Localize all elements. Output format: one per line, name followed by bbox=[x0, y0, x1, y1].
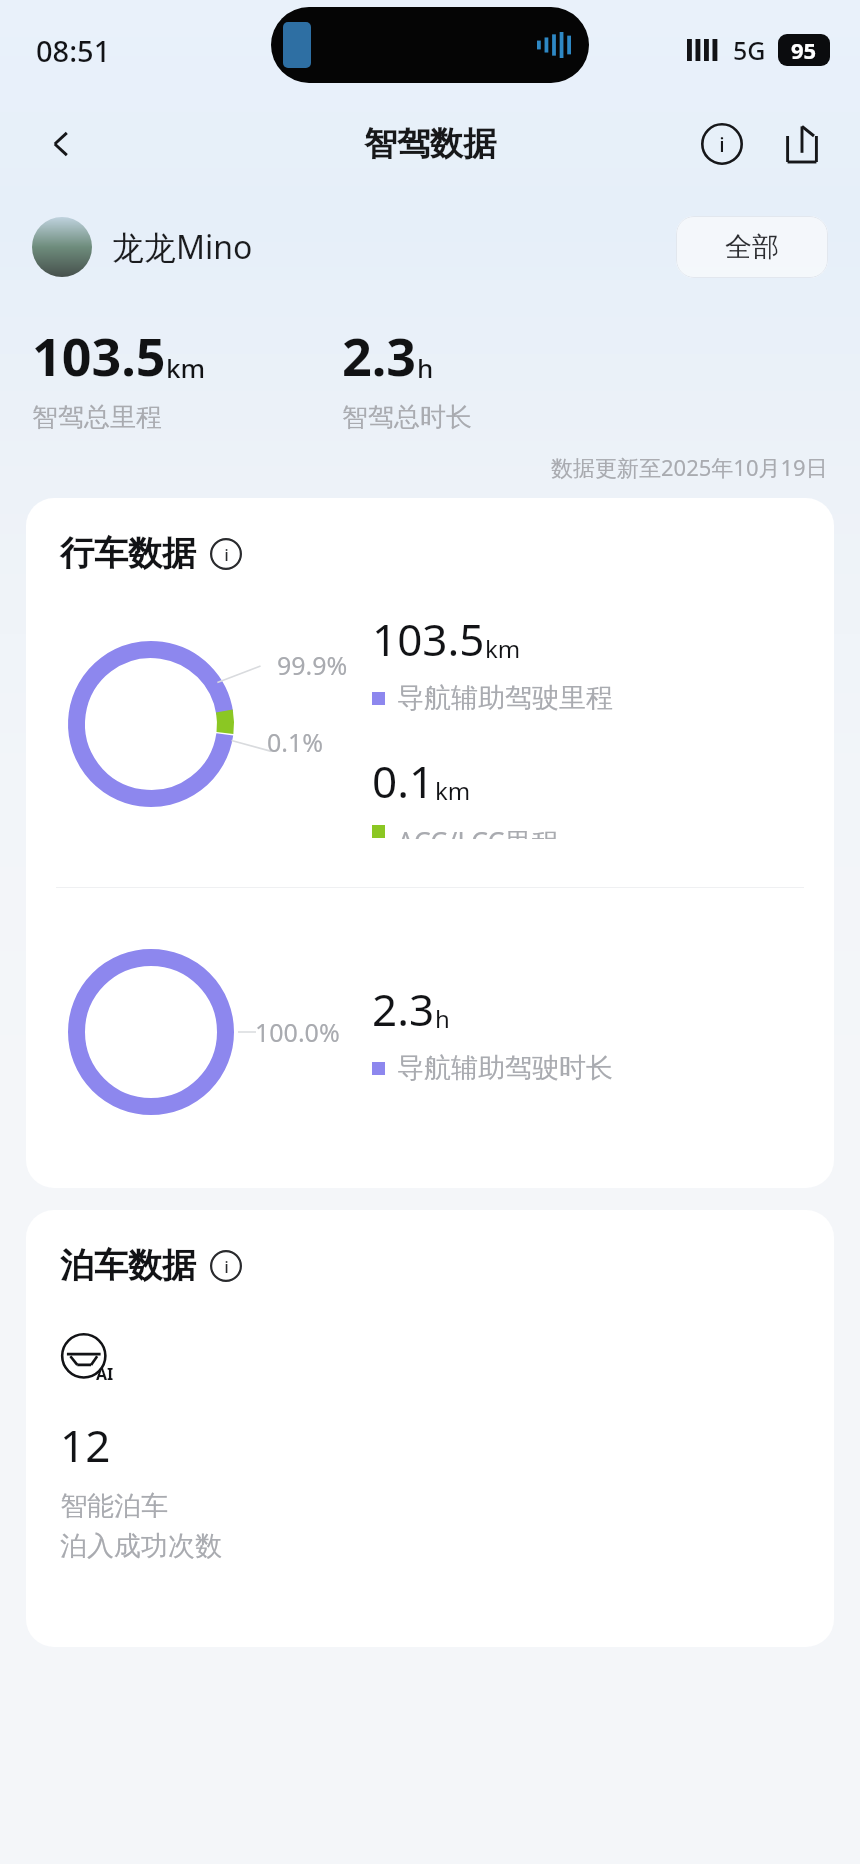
staticText: 100.0% bbox=[255, 1015, 340, 1049]
button[interactable]: Back bbox=[34, 116, 90, 172]
staticText: i bbox=[224, 1255, 229, 1278]
staticText: i bbox=[719, 131, 725, 158]
staticText: 智驾数据 bbox=[364, 123, 496, 165]
staticText: 2.3 bbox=[372, 979, 435, 1039]
staticText: 0.1 bbox=[372, 751, 435, 811]
staticText: 95 bbox=[791, 35, 817, 65]
staticText: ACC/LCC里程 bbox=[397, 823, 559, 839]
staticText: 103.5 bbox=[372, 609, 485, 669]
staticText: 5G bbox=[733, 33, 766, 67]
button[interactable]: 龙龙Mino bbox=[112, 225, 253, 269]
staticText: 泊入成功次数 bbox=[60, 1529, 222, 1563]
staticText: 08:51 bbox=[36, 31, 111, 70]
staticText: 0.1% bbox=[267, 725, 324, 759]
staticText: 数据更新至2025年10月19日 bbox=[551, 452, 828, 482]
staticText: 导航辅助驾驶里程 bbox=[397, 681, 613, 715]
button[interactable]: 全部 bbox=[676, 216, 828, 278]
staticText: 行车数据 bbox=[60, 532, 196, 575]
staticText: km bbox=[166, 350, 206, 385]
staticText: 12 bbox=[60, 1415, 111, 1475]
staticText: h bbox=[435, 1002, 450, 1035]
staticText: i bbox=[224, 543, 229, 566]
staticText: 泊车数据 bbox=[60, 1244, 196, 1287]
staticText: 智驾总里程 bbox=[32, 401, 162, 434]
staticText: 智能泊车 bbox=[60, 1489, 168, 1523]
staticText: 导航辅助驾驶时长 bbox=[397, 1051, 613, 1085]
staticText: 智驾总时长 bbox=[342, 401, 472, 434]
staticText: 103.5 bbox=[32, 320, 166, 391]
staticText: km bbox=[435, 774, 471, 807]
button[interactable]: Profile photo bbox=[32, 217, 92, 277]
staticText: h bbox=[417, 350, 434, 385]
staticText: AI bbox=[96, 1363, 114, 1385]
button[interactable]: Share bbox=[772, 114, 832, 174]
staticText: 2.3 bbox=[342, 320, 417, 391]
staticText: 全部 bbox=[725, 230, 779, 264]
button[interactable]: Info bbox=[692, 114, 752, 174]
staticText: km bbox=[485, 632, 521, 665]
button[interactable]: 行车数据 bbox=[60, 532, 242, 575]
staticText: 99.9% bbox=[277, 648, 348, 682]
button[interactable]: 泊车数据 bbox=[60, 1244, 242, 1287]
